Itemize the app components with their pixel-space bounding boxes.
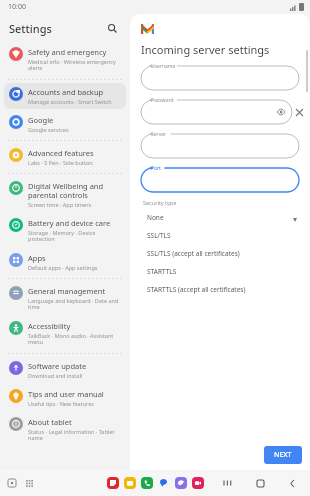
button[interactable]: Battery and device care (4, 214, 126, 247)
button[interactable]: NEXT (264, 446, 302, 464)
button[interactable]: Recents (220, 475, 236, 491)
staticText: Accessibility (28, 321, 71, 331)
button[interactable]: Accessibility (4, 317, 126, 350)
staticText: Manage accounts · Smart Switch (28, 98, 112, 105)
button[interactable]: Recent apps (5, 476, 19, 490)
button[interactable]: Advanced features (4, 144, 126, 170)
staticText: 10:00 (8, 2, 26, 12)
button[interactable]: msg (158, 477, 170, 489)
button[interactable]: Port (141, 168, 299, 192)
staticText: NEXT (274, 450, 292, 460)
staticText: None (147, 213, 164, 222)
staticText: Digital Wellbeing and parental controls (28, 181, 121, 200)
button[interactable]: Clear password (292, 105, 306, 119)
button[interactable]: Username (141, 66, 299, 90)
staticText: Settings (9, 21, 52, 36)
staticText: SSL/TLS (accept all certificates) (147, 249, 240, 258)
button[interactable]: SSL/TLS (accept all certificates) (140, 244, 290, 262)
button[interactable]: STARTTLS (accept all certificates) (140, 280, 290, 298)
button[interactable]: Server (141, 134, 299, 158)
button[interactable]: General management (4, 282, 126, 315)
staticText: STARTTLS (147, 267, 177, 276)
button[interactable]: Accounts and backup (4, 83, 126, 109)
staticText: Port (151, 165, 161, 172)
button[interactable]: files (124, 477, 136, 489)
staticText: Google services (28, 126, 69, 133)
button[interactable]: Digital Wellbeing and parental controls (4, 177, 126, 212)
button[interactable]: phone (141, 477, 153, 489)
button[interactable]: None (140, 208, 290, 226)
staticText: Password (151, 97, 174, 104)
staticText: Medical info · Wireless emergency alerts (28, 58, 121, 72)
staticText: Google (28, 115, 54, 125)
button[interactable]: Home (252, 475, 268, 491)
button[interactable]: All apps (22, 476, 36, 490)
staticText: Accounts and backup (28, 87, 104, 97)
button[interactable]: SSL/TLS (140, 226, 290, 244)
staticText: Language and keyboard · Date and time (28, 297, 121, 311)
staticText: Server (151, 131, 167, 138)
staticText: Safety and emergency (28, 47, 107, 57)
staticText: Incoming server settings (141, 42, 270, 57)
button[interactable]: cam (192, 477, 204, 489)
staticText: Useful tips · New features (28, 400, 94, 407)
staticText: Username (151, 63, 176, 70)
staticText: Labs · S Pen · Side button (28, 159, 93, 166)
staticText: Default apps · App settings (28, 264, 98, 271)
staticText: Apps (28, 253, 46, 263)
button[interactable]: Google (4, 111, 126, 137)
button[interactable]: Back (284, 475, 300, 491)
staticText: Screen time · App timers (28, 201, 92, 208)
button[interactable]: chat (175, 477, 187, 489)
button[interactable]: Show password (276, 107, 286, 117)
button[interactable]: Password (141, 100, 292, 124)
button[interactable]: Software update (4, 357, 126, 383)
button[interactable]: About tablet (4, 413, 126, 446)
button[interactable]: Safety and emergency (4, 43, 126, 76)
staticText: Tips and user manual (28, 389, 104, 399)
staticText: Advanced features (28, 148, 94, 158)
staticText: General management (28, 286, 106, 296)
staticText: Battery and device care (28, 218, 111, 228)
staticText: Storage · Memory · Device protection (28, 229, 121, 243)
button[interactable]: STARTTLS (140, 262, 290, 280)
button[interactable]: Apps (4, 249, 126, 275)
staticText: Download and install (28, 372, 83, 379)
staticText: About tablet (28, 417, 72, 427)
staticText: STARTTLS (accept all certificates) (147, 285, 246, 294)
staticText: Status · Legal information · Tablet name (28, 428, 121, 442)
button[interactable]: Tips and user manual (4, 385, 126, 411)
button[interactable]: note (107, 477, 119, 489)
staticText: TalkBack · Mono audio · Assistant menu (28, 332, 121, 346)
staticText: Security type (143, 199, 177, 206)
staticText: Software update (28, 361, 87, 371)
button[interactable]: Search (103, 19, 121, 37)
staticText: SSL/TLS (147, 231, 171, 240)
